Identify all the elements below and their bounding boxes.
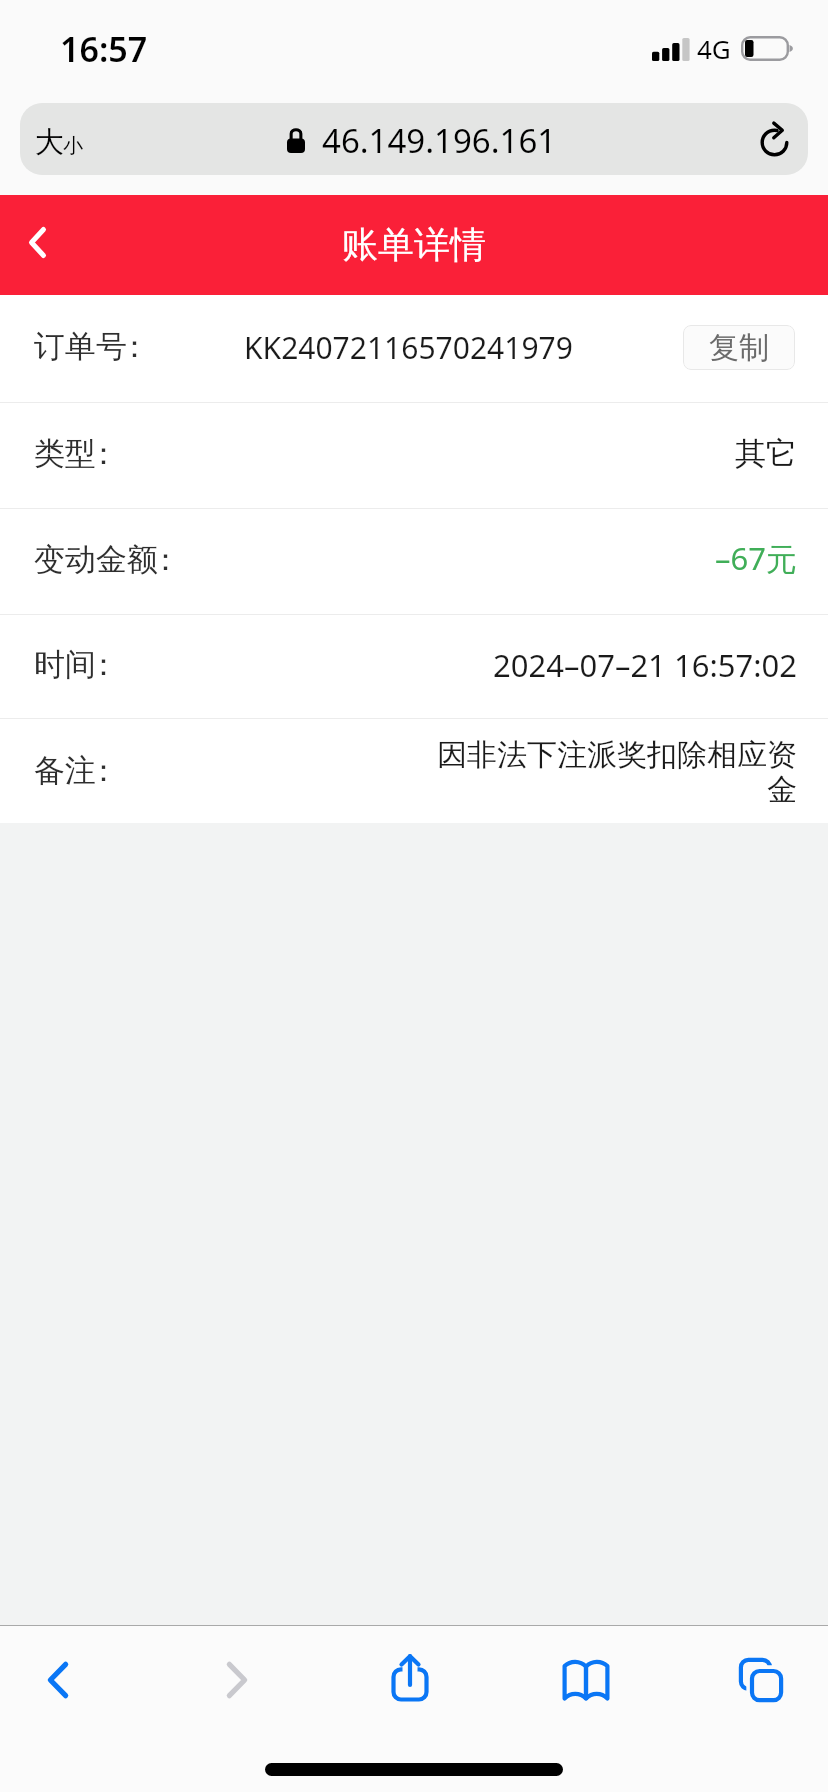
button[interactable]: 复制 (683, 325, 795, 370)
button[interactable]: 备注 (0, 719, 828, 823)
staticText: ： (88, 645, 119, 684)
button[interactable]: Back (14, 1626, 102, 1734)
button[interactable]: Bookmarks (542, 1626, 630, 1734)
staticText: 大 (35, 124, 64, 161)
button[interactable]: Forward (193, 1626, 281, 1734)
staticText: 账单详情 (342, 222, 486, 267)
button[interactable]: Tabs (717, 1626, 805, 1734)
staticText: ： (88, 434, 119, 473)
staticText: 4G (697, 31, 731, 66)
button[interactable]: 类型 (0, 403, 828, 508)
staticText: 时间 (34, 645, 96, 684)
staticText: 复制 (709, 329, 769, 367)
button[interactable]: Reload (747, 112, 803, 168)
staticText: 其它 (735, 434, 797, 473)
staticText: ： (150, 540, 181, 579)
staticText: 变动金额 (34, 540, 158, 579)
staticText: 46.149.196.161 (322, 118, 557, 163)
staticText: ： (88, 751, 119, 790)
staticText: 16:57 (60, 26, 148, 72)
staticText: KK24072116570241979 (244, 327, 573, 368)
button[interactable]: Share (366, 1626, 454, 1734)
staticText: 备注 (34, 751, 96, 790)
staticText: 2024–07–21 16:57:02 (493, 644, 797, 686)
button[interactable]: 46.149.196.161 (110, 103, 730, 175)
button[interactable]: 大 (26, 109, 98, 169)
staticText: 类型 (34, 434, 96, 473)
button[interactable]: 变动金额 (0, 509, 828, 614)
button[interactable]: 时间 (0, 615, 828, 718)
button[interactable]: Back (0, 195, 76, 295)
staticText: 因非法下注派奖扣除相应资金 (435, 736, 797, 809)
staticText: 小 (63, 133, 83, 158)
staticText: ： (119, 327, 150, 366)
staticText: 订单号 (34, 327, 127, 366)
button[interactable]: 订单号 (0, 295, 828, 402)
staticText: –67元 (715, 537, 797, 579)
